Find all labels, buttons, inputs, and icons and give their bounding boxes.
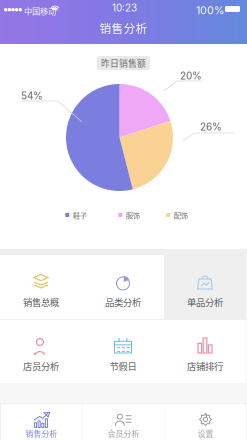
staticText: 节假日 — [109, 359, 136, 373]
staticText: 20% — [180, 70, 202, 82]
button[interactable]: 昨日销售额 — [97, 56, 150, 70]
button[interactable]: 会员分析 — [82, 403, 164, 440]
staticText: 26% — [200, 121, 222, 133]
button[interactable]: 单品分析 — [164, 255, 246, 319]
staticText: 100% — [196, 4, 224, 17]
staticText: 配饰 — [174, 210, 188, 220]
staticText: 中国移动 — [24, 5, 56, 17]
staticText: 品类分析 — [105, 295, 141, 309]
button[interactable]: 节假日 — [82, 319, 164, 383]
staticText: 销售分析 — [99, 20, 147, 36]
staticText: 销售分析 — [25, 428, 57, 439]
button[interactable]: 品类分析 — [82, 255, 164, 319]
staticText: 设置 — [197, 428, 213, 439]
staticText: 昨日销售额 — [101, 57, 146, 69]
staticText: 10:23 — [112, 2, 137, 14]
button[interactable]: 销售分析 — [0, 403, 82, 440]
staticText: 服饰 — [126, 210, 140, 220]
staticText: 会员分析 — [107, 428, 139, 439]
staticText: 销售总概 — [23, 295, 59, 309]
staticText: 店铺排行 — [187, 359, 223, 373]
staticText: 54% — [21, 90, 43, 102]
button[interactable]: 店员分析 — [0, 319, 82, 383]
staticText: 单品分析 — [187, 295, 223, 309]
staticText: 店员分析 — [23, 359, 59, 373]
button[interactable]: 店铺排行 — [164, 319, 246, 383]
staticText: 鞋子 — [73, 210, 87, 220]
button[interactable]: 设置 — [164, 403, 246, 440]
button[interactable]: 销售总概 — [0, 255, 82, 319]
